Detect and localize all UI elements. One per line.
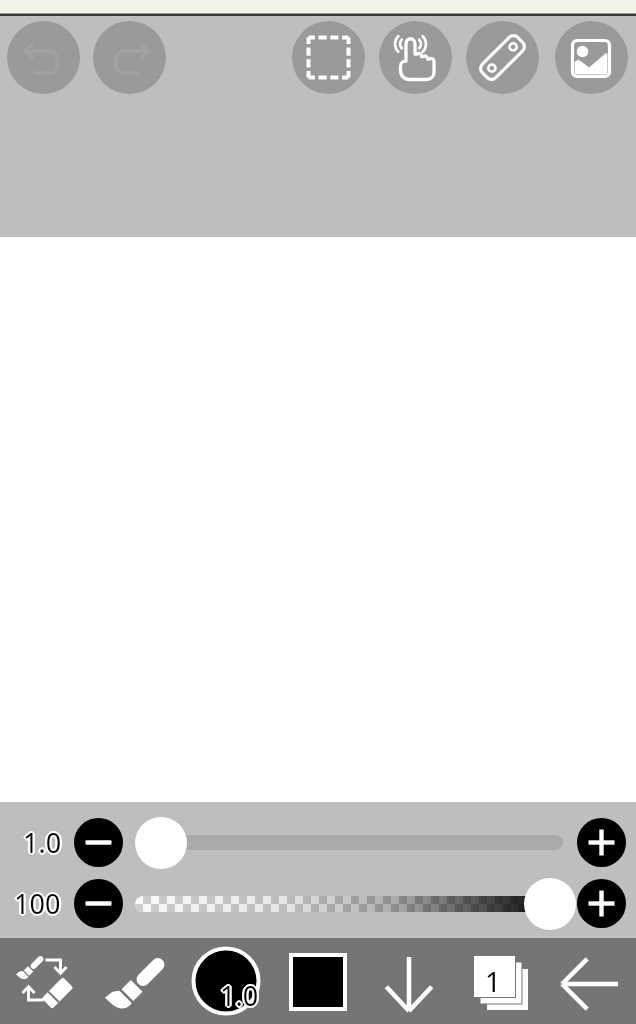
button[interactable]: Undo [7,21,80,94]
button[interactable]: Decrease opacity [74,879,123,928]
button[interactable] [131,894,567,914]
staticText: 1.0 [220,977,259,1014]
button[interactable]: Download [367,940,451,1024]
staticText: 1.0 [23,823,62,860]
button[interactable]: Layers [455,940,539,1024]
button[interactable]: Brush [95,940,179,1024]
button[interactable]: Selection [292,21,365,94]
staticText: 1.0 [23,825,62,862]
staticText: 100 [13,885,60,922]
staticText: 100 [14,887,61,924]
button[interactable]: Back [548,940,636,1024]
button[interactable]: Size thumb [135,817,187,869]
staticText: 1.0 [221,978,260,1015]
button[interactable]: Decrease size [74,818,123,867]
staticText: 100 [12,885,59,922]
staticText: 1.0 [220,975,259,1012]
staticText: 1.0 [22,823,61,860]
staticText: 100 [14,883,61,920]
staticText: 1 [485,962,502,1000]
staticText: 1.0 [23,826,62,863]
button[interactable]: Colour [276,940,360,1024]
staticText: 1.0 [221,977,260,1014]
button[interactable]: Gallery [555,21,628,94]
staticText: 100 [15,885,62,922]
staticText: 1.0 [24,824,63,861]
button[interactable]: Ruler [466,21,539,94]
staticText: 100 [16,885,63,922]
staticText: 1.0 [219,976,258,1013]
button[interactable]: Brush size [191,946,261,1016]
button[interactable] [131,834,567,851]
staticText: 100 [15,884,62,921]
staticText: 1.0 [219,977,258,1014]
staticText: 1.0 [22,824,61,861]
staticText: 1.0 [222,977,261,1014]
button[interactable]: Redo [93,21,166,94]
staticText: 100 [14,885,61,922]
staticText: 1.0 [220,976,259,1013]
staticText: 1.0 [22,825,61,862]
staticText: 1.0 [23,824,62,861]
staticText: 1.0 [24,825,63,862]
button[interactable]: Increase size [577,818,626,867]
staticText: 100 [14,886,61,923]
staticText: 1.0 [23,824,62,861]
button[interactable]: Switch tool [2,940,86,1024]
staticText: 1.0 [218,977,257,1014]
button[interactable]: Opacity thumb [524,878,576,930]
staticText: 1.0 [21,824,60,861]
staticText: 100 [15,886,62,923]
staticText: 1.0 [220,978,259,1015]
staticText: 1.0 [221,976,260,1013]
button[interactable]: Increase opacity [577,879,626,928]
staticText: 1.0 [24,823,63,860]
staticText: 100 [13,884,60,921]
staticText: 100 [13,886,60,923]
staticText: 1.0 [220,979,259,1016]
staticText: 1.0 [219,978,258,1015]
staticText: 1.0 [23,822,62,859]
button[interactable]: Finger [379,21,452,94]
staticText: 1.0 [220,977,259,1014]
staticText: 100 [14,885,61,922]
staticText: 1.0 [25,824,64,861]
staticText: 100 [14,884,61,921]
